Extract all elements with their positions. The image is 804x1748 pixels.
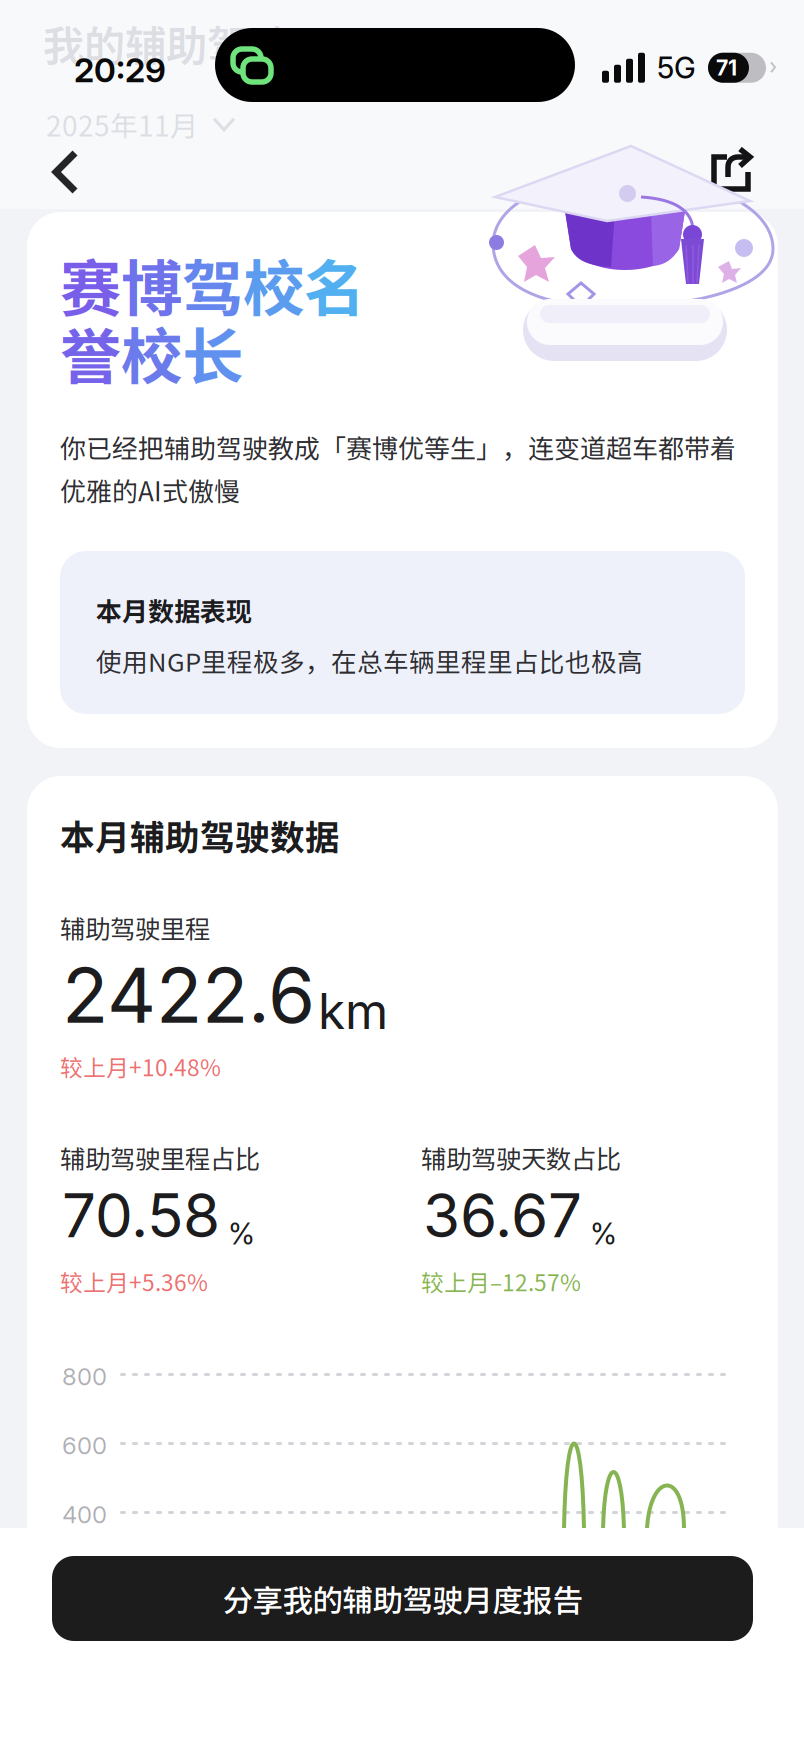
staticText: 36.67 bbox=[423, 1179, 582, 1252]
staticText: 分享我的辅助驾驶月度报告 bbox=[222, 1576, 582, 1620]
staticText: 校 bbox=[121, 308, 182, 397]
staticText: 誉 bbox=[60, 308, 121, 397]
staticText: % bbox=[228, 1216, 255, 1252]
staticText: 2422.6 bbox=[62, 949, 315, 1041]
staticText: 较上月–12.57% bbox=[421, 1265, 581, 1298]
staticText: 赛 bbox=[60, 240, 121, 329]
staticText: 70.58 bbox=[62, 1179, 220, 1252]
staticText: 本月数据表现 bbox=[96, 591, 252, 629]
staticText: 驾 bbox=[182, 240, 243, 329]
staticText: 优雅的AI式傲慢 bbox=[60, 471, 240, 509]
staticText: 71 bbox=[716, 55, 737, 81]
staticText: 本月辅助驾驶数据 bbox=[60, 810, 340, 860]
staticText: 你已经把辅助驾驶教成「赛博优等生」，连变道超车都带着 bbox=[60, 428, 736, 466]
staticText: 我的辅助驾驶 bbox=[43, 13, 289, 73]
staticText: 名 bbox=[304, 240, 365, 329]
staticText: 2025年11月 bbox=[46, 104, 198, 144]
staticText: 较上月+5.36% bbox=[60, 1265, 208, 1298]
staticText: 长 bbox=[182, 308, 243, 397]
button[interactable]: 分享我的辅助驾驶月度报告 bbox=[52, 1556, 753, 1641]
button[interactable]: Back bbox=[28, 134, 104, 210]
staticText: 辅助驾驶天数占比 bbox=[421, 1139, 621, 1176]
staticText: km bbox=[318, 981, 388, 1041]
staticText: 较上月+10.48% bbox=[60, 1050, 221, 1083]
staticText: % bbox=[590, 1216, 617, 1252]
staticText: 博 bbox=[121, 240, 182, 329]
staticText: 使用NGP里程极多，在总车辆里程里占比也极高 bbox=[96, 642, 643, 679]
staticText: 辅助驾驶里程占比 bbox=[60, 1139, 260, 1176]
staticText: 20:29 bbox=[74, 50, 166, 90]
staticText: 600 bbox=[62, 1431, 107, 1460]
button[interactable]: Share bbox=[694, 134, 770, 210]
staticText: 400 bbox=[62, 1500, 107, 1529]
staticText: 校 bbox=[243, 240, 304, 329]
staticText: 辅助驾驶里程 bbox=[60, 909, 210, 946]
staticText: 5G bbox=[657, 50, 696, 85]
staticText: 800 bbox=[62, 1362, 107, 1391]
